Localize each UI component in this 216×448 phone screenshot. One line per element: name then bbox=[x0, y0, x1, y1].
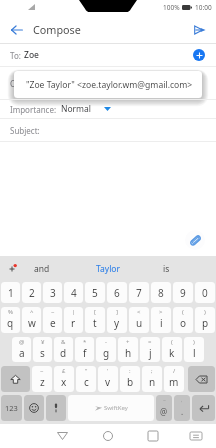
button[interactable]: Navigate up bbox=[0, 16, 33, 43]
button[interactable]: < bbox=[129, 307, 149, 333]
staticText: ; bbox=[151, 367, 153, 375]
staticText: = bbox=[148, 338, 152, 346]
button[interactable]: Send bbox=[184, 16, 216, 43]
button[interactable]: Change importance bbox=[100, 102, 114, 116]
button[interactable]: ( bbox=[173, 307, 193, 333]
button[interactable]: Shift bbox=[1, 366, 30, 392]
staticText: 10:00 bbox=[195, 3, 212, 12]
button[interactable]: ] bbox=[107, 307, 127, 333]
staticText: Subject: bbox=[10, 125, 40, 136]
button[interactable]: * bbox=[75, 337, 94, 362]
button[interactable]: % bbox=[1, 307, 20, 333]
staticText: ¥ bbox=[41, 338, 45, 346]
button[interactable]: Emoji bbox=[24, 395, 44, 421]
button[interactable]: 9 bbox=[173, 282, 193, 303]
button[interactable]: More suggestions bbox=[0, 256, 23, 282]
staticText: m bbox=[169, 375, 179, 389]
button[interactable]: ~ bbox=[32, 366, 52, 392]
button[interactable]: 4 bbox=[64, 282, 83, 303]
button[interactable]: 2 bbox=[22, 282, 41, 303]
staticText: Cc: bbox=[10, 78, 22, 89]
staticText: ^ bbox=[30, 308, 34, 316]
staticText: | bbox=[72, 308, 76, 316]
button[interactable]: 3 bbox=[43, 282, 62, 303]
button[interactable]: ' bbox=[98, 366, 118, 392]
button[interactable]: ) bbox=[195, 307, 215, 333]
button[interactable]: ^ bbox=[22, 307, 41, 333]
button[interactable]: ~ bbox=[43, 307, 62, 333]
staticText: & bbox=[61, 338, 66, 346]
button[interactable]: Period bbox=[174, 395, 190, 421]
button[interactable]: 6 bbox=[107, 282, 127, 303]
staticText: 9 bbox=[180, 286, 186, 300]
staticText: v bbox=[105, 375, 111, 389]
button[interactable]: ¥ bbox=[33, 337, 52, 362]
button[interactable]: "Zoe Taylor" <zoe.taylor.wm@gmail.com> bbox=[14, 71, 202, 98]
staticText: ~ bbox=[163, 397, 166, 404]
button[interactable]: ) bbox=[184, 337, 204, 362]
button[interactable]: 5 bbox=[85, 282, 105, 303]
staticText: is bbox=[163, 263, 170, 275]
staticText: : bbox=[129, 367, 131, 375]
button[interactable]: Backspace bbox=[188, 366, 215, 392]
staticText: o bbox=[180, 316, 187, 330]
button[interactable]: Attach file bbox=[185, 230, 205, 250]
staticText: and bbox=[34, 263, 50, 275]
button[interactable]: > bbox=[151, 307, 171, 333]
staticText: 123 bbox=[5, 403, 18, 413]
staticText: i bbox=[160, 316, 163, 330]
button[interactable]: ( bbox=[162, 337, 182, 362]
button[interactable]: ; bbox=[142, 366, 162, 392]
button[interactable]: and bbox=[23, 256, 61, 282]
staticText: [ bbox=[94, 308, 96, 316]
staticText: 6 bbox=[114, 286, 120, 300]
button[interactable]: £ bbox=[54, 366, 74, 392]
button[interactable]: + bbox=[118, 337, 138, 362]
staticText: @ bbox=[19, 338, 25, 346]
button[interactable]: / bbox=[164, 366, 184, 392]
staticText: - bbox=[105, 338, 107, 346]
button[interactable]: Home bbox=[85, 424, 130, 448]
button[interactable]: " bbox=[76, 366, 96, 392]
button[interactable]: & bbox=[54, 337, 73, 362]
button[interactable]: Recent apps bbox=[130, 424, 175, 448]
staticText: @ bbox=[160, 406, 168, 417]
button[interactable]: Symbols bbox=[1, 395, 22, 421]
staticText: ' bbox=[107, 367, 109, 375]
staticText: 4 bbox=[71, 286, 77, 300]
staticText: a bbox=[19, 346, 25, 360]
button[interactable]: Hide keyboard bbox=[175, 424, 216, 448]
button[interactable]: - bbox=[96, 337, 116, 362]
button[interactable]: Voice input bbox=[46, 395, 66, 421]
button[interactable]: @ bbox=[12, 337, 31, 362]
staticText: 8 bbox=[158, 286, 164, 300]
button[interactable]: = bbox=[140, 337, 160, 362]
staticText: ] bbox=[116, 308, 118, 316]
button[interactable]: Space bbox=[68, 395, 154, 421]
staticText: f bbox=[83, 346, 87, 360]
staticText: % bbox=[8, 308, 13, 316]
button[interactable]: Back bbox=[40, 424, 85, 448]
staticText: x bbox=[61, 375, 67, 389]
button[interactable]: 0 bbox=[195, 282, 215, 303]
staticText: y bbox=[114, 316, 120, 330]
staticText: ) bbox=[204, 308, 206, 316]
button[interactable]: At sign bbox=[156, 395, 172, 421]
staticText: k bbox=[169, 346, 175, 360]
staticText: ~ bbox=[51, 308, 55, 316]
button[interactable]: Enter bbox=[192, 395, 215, 421]
button[interactable]: 1 bbox=[1, 282, 20, 303]
staticText: 1 bbox=[8, 286, 14, 300]
button[interactable]: is bbox=[155, 256, 178, 282]
staticText: d bbox=[60, 346, 67, 360]
staticText: q bbox=[7, 316, 14, 330]
button[interactable]: | bbox=[64, 307, 83, 333]
button[interactable]: [ bbox=[85, 307, 105, 333]
button[interactable]: Add recipient bbox=[193, 49, 205, 61]
staticText: t bbox=[93, 316, 97, 330]
button[interactable]: Taylor bbox=[61, 256, 155, 282]
button[interactable]: : bbox=[120, 366, 140, 392]
button[interactable]: 8 bbox=[151, 282, 171, 303]
button[interactable]: 7 bbox=[129, 282, 149, 303]
staticText: ( bbox=[182, 308, 184, 316]
